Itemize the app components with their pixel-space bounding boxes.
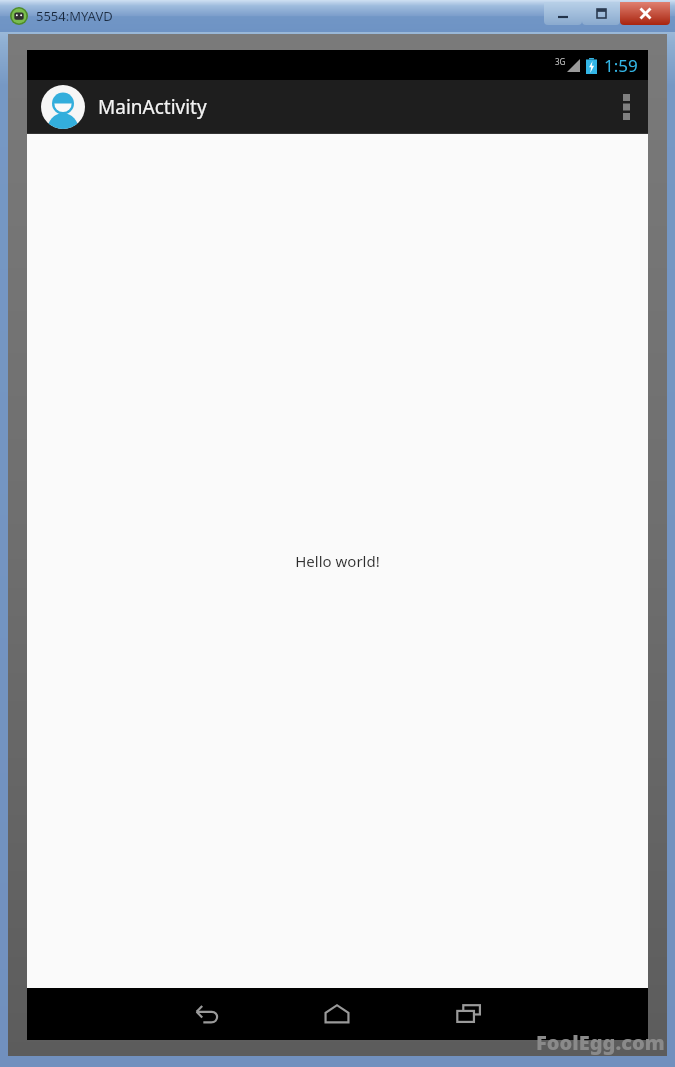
staticText: FoolEgg.com — [536, 1029, 665, 1055]
staticText: Hello world! — [295, 551, 380, 571]
button[interactable]: More options — [604, 80, 648, 134]
button[interactable]: Recent apps — [446, 988, 492, 1040]
button[interactable]: Maximize — [582, 2, 620, 25]
button[interactable]: Back — [182, 988, 228, 1040]
button[interactable]: Home — [314, 988, 360, 1040]
staticText: 5554:MYAVD — [36, 7, 113, 25]
staticText: MainActivity — [98, 94, 207, 120]
button[interactable]: Close — [620, 2, 670, 25]
staticText: 3G — [555, 56, 566, 67]
staticText: 1:59 — [604, 54, 638, 77]
button[interactable]: Minimize — [544, 2, 582, 25]
